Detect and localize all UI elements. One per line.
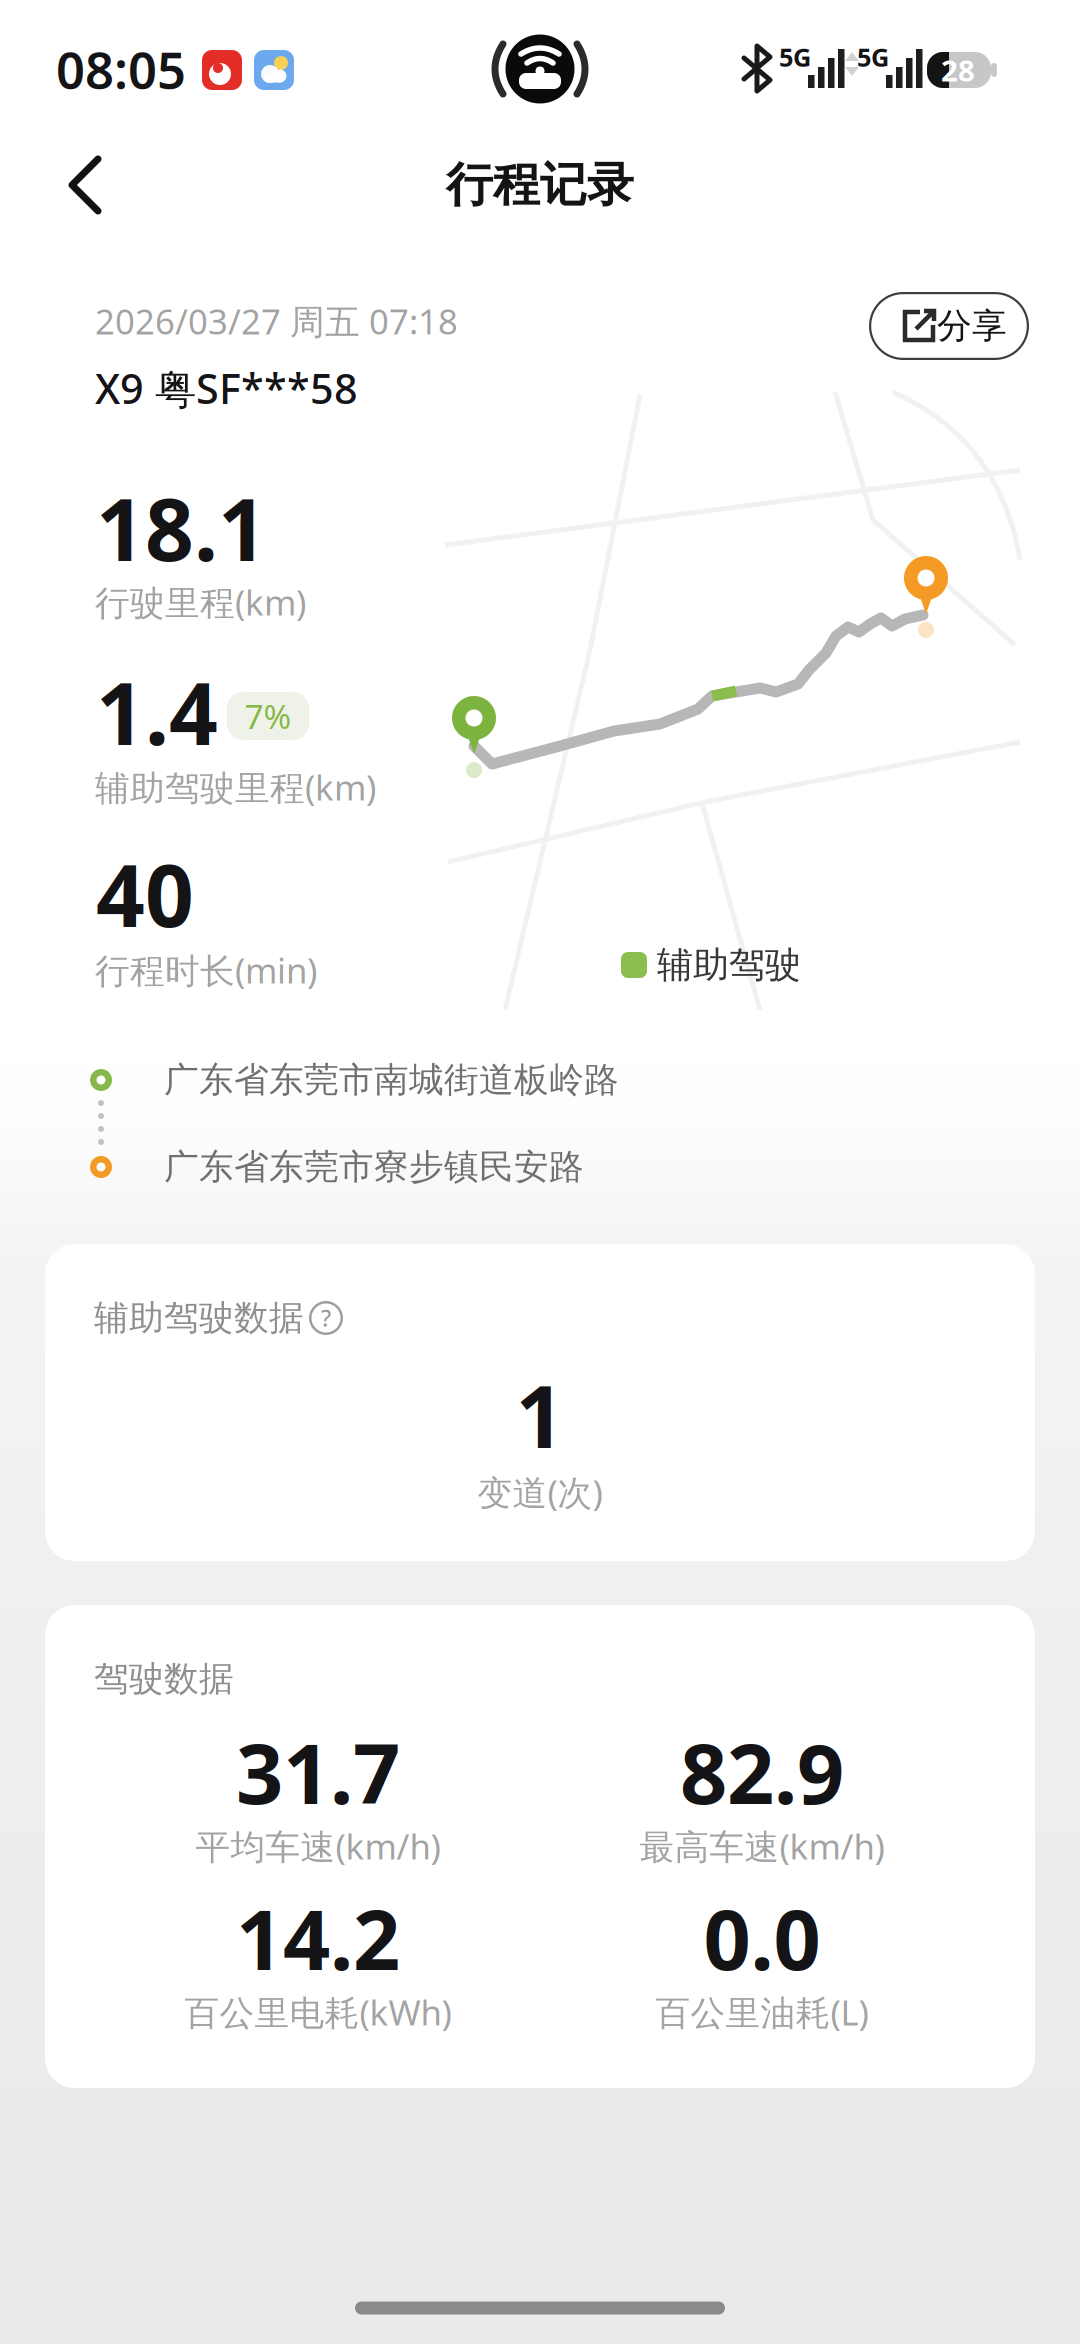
staticText: 变道(次) [477,1469,602,1515]
staticText: 2026/03/27 周五 07:18 [95,298,458,344]
staticText: 0.0 [703,1883,820,1993]
staticText: 平均车速(km/h) [195,1823,440,1869]
staticText: 18.1 [96,471,267,585]
staticText: 辅助驾驶数据 [94,1297,304,1339]
staticText: 28 [941,50,975,89]
staticText: 40 [96,837,194,951]
staticText: 行程记录 [446,156,634,214]
staticText: 分享 [937,305,1007,347]
staticText: 1.4 [96,655,218,769]
staticText: 广东省东莞市寮步镇民安路 [164,1146,584,1188]
staticText: 百公里电耗(kWh) [184,1989,451,2035]
staticText: 7% [244,694,291,738]
staticText: 08:05 [56,35,186,103]
staticText: 14.2 [236,1883,400,1993]
staticText: ? [321,1303,331,1333]
staticText: 5G [779,40,811,74]
staticText: 百公里油耗(L) [655,1989,868,2035]
staticText: X9 粤SF***58 [95,360,358,415]
staticText: 辅助驾驶里程(km) [95,764,376,810]
button[interactable]: 辅助驾驶数据说明 [304,1296,348,1340]
staticText: 82.9 [680,1717,844,1827]
button[interactable]: 返回 [45,140,125,230]
staticText: 行程时长(min) [95,947,317,993]
staticText: 广东省东莞市南城街道板岭路 [164,1059,619,1101]
staticText: 驾驶数据 [94,1658,234,1700]
staticText: 辅助驾驶 [657,943,801,987]
staticText: 5G [857,40,889,74]
staticText: 1 [515,1358,564,1472]
staticText: 最高车速(km/h) [639,1823,884,1869]
staticText: 行驶里程(km) [95,579,306,625]
staticText: 31.7 [236,1717,400,1827]
button[interactable]: 分享 [869,292,1029,360]
